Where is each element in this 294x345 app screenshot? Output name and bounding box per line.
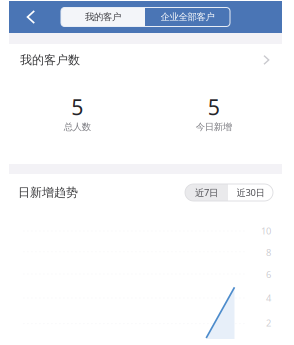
staticText: 6: [266, 268, 271, 281]
button[interactable]: 近7日: [185, 184, 228, 201]
staticText: 4: [266, 292, 271, 304]
button[interactable]: Back: [17, 1, 45, 33]
staticText: 我的客户数: [20, 53, 80, 67]
staticText: 5: [208, 93, 220, 121]
staticText: 企业全部客户: [160, 11, 214, 23]
button[interactable]: 企业全部客户: [145, 7, 230, 26]
staticText: 近30日: [236, 186, 264, 199]
staticText: 8: [266, 246, 271, 259]
staticText: 总人数: [64, 121, 91, 133]
staticText: 日新增趋势: [18, 185, 78, 200]
button[interactable]: 我的客户: [61, 7, 145, 26]
button[interactable]: 我的客户数: [9, 44, 282, 76]
staticText: 近7日: [195, 186, 218, 199]
staticText: 5: [71, 93, 83, 121]
button[interactable]: 近30日: [228, 184, 273, 201]
staticText: 我的客户: [85, 11, 121, 23]
staticText: 10: [261, 225, 271, 237]
staticText: 2: [266, 317, 271, 329]
staticText: 今日新增: [196, 121, 232, 133]
